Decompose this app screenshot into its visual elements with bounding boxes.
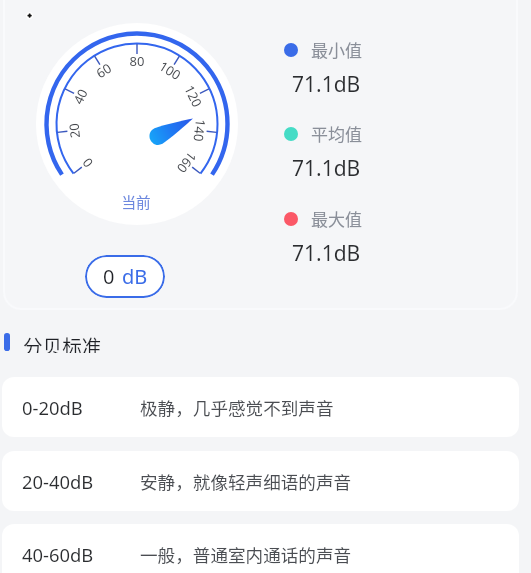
staticText: 平均值 xyxy=(311,121,362,146)
staticText: 71.1dB xyxy=(292,70,361,99)
staticText: 安静，就像轻声细语的声音 xyxy=(140,469,352,494)
staticText: 0-20dB xyxy=(22,395,83,420)
staticText: 40-60dB xyxy=(22,542,94,567)
staticText: 最大值 xyxy=(311,206,362,231)
staticText: 一般，普通室内通话的声音 xyxy=(140,542,352,567)
staticText: 71.1dB xyxy=(292,154,361,183)
button[interactable]: 0-20dB xyxy=(2,377,519,437)
staticText: 极静，几乎感觉不到声音 xyxy=(140,395,334,420)
staticText: 当前 xyxy=(121,191,151,212)
staticText: 0 xyxy=(103,263,115,290)
button[interactable]: 0 xyxy=(85,255,165,298)
staticText: 分贝标准 xyxy=(23,331,102,353)
staticText: 最小值 xyxy=(311,37,362,62)
button[interactable]: 40-60dB xyxy=(2,524,519,573)
button[interactable]: 20-40dB xyxy=(2,451,519,511)
staticText: dB xyxy=(122,263,148,290)
staticText: 20-40dB xyxy=(22,469,94,494)
staticText: 71.1dB xyxy=(292,239,361,268)
